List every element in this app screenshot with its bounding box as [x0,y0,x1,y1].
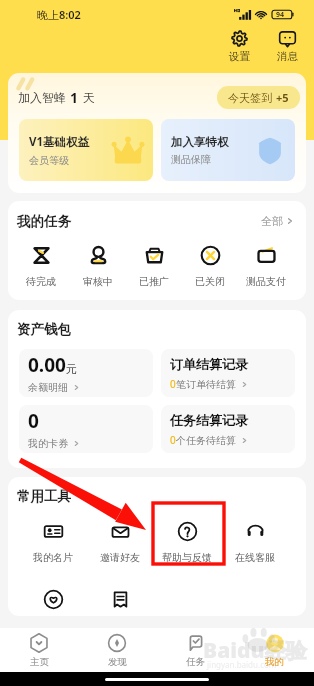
staticText: 审核中 [83,275,113,288]
button[interactable]: 0.00 [19,349,153,397]
staticText: 天 [83,90,95,105]
staticText: 帮助与反馈 [162,551,212,564]
button[interactable]: 今天签到 [217,86,300,109]
button[interactable]: V1基础权益 [19,119,153,181]
staticText: 0 [170,433,176,447]
staticText: 94 [276,10,285,20]
button[interactable]: 主页 [0,628,78,672]
staticText: 个任务待结算 [176,434,236,447]
button[interactable]: 发现 [78,628,156,672]
button[interactable]: 审核中 [80,243,116,290]
staticText: 我的 [265,656,284,668]
staticText: jingyan.baidu.com [207,659,277,670]
staticText: 加入享特权 [171,135,229,149]
staticText: 已推广 [139,275,169,288]
staticText: 晚上8:02 [37,7,81,22]
staticText: 笔订单待结算 [176,378,236,391]
button[interactable]: 已关闭 [192,243,228,290]
staticText: 测品支付 [246,275,286,288]
staticText: 0 [28,408,39,434]
button[interactable]: 0 [19,405,153,453]
staticText: Baidu经验 [203,636,307,665]
staticText: 我的名片 [33,551,73,564]
staticText: 加入智蜂 [18,90,66,105]
button[interactable]: 我的关注 [30,587,76,616]
button[interactable]: 我的 [235,628,314,672]
staticText: 任务 [186,656,205,668]
button[interactable]: 订单结算记录 [161,349,295,397]
staticText: 设置 [229,50,250,63]
staticText: 邀请好友 [100,551,140,564]
staticText: 订单结算记录 [170,356,248,372]
staticText: 常用工具 [17,488,71,505]
staticText: V1基础权益 [29,134,90,150]
button[interactable]: 测品支付 [243,243,289,290]
button[interactable]: 待完成 [23,243,59,290]
staticText: 消息 [277,50,298,63]
staticText: 任务结算记录 [170,412,248,428]
button[interactable]: Messages [271,28,304,65]
staticText: 资产钱包 [17,321,71,338]
staticText: 余额明细 [28,381,68,394]
staticText: 0.00 [28,352,66,378]
staticText: 元 [66,362,77,376]
button[interactable]: 任务结算记录 [161,405,295,453]
button[interactable]: 要我开票 [97,587,143,616]
staticText: 待完成 [26,275,56,288]
staticText: 测品保障 [171,153,211,166]
button[interactable]: 全部 [259,212,296,230]
button[interactable]: 帮助与反馈 [159,519,215,566]
button[interactable]: Settings [223,28,256,65]
button[interactable]: 在线客服 [232,519,278,566]
button[interactable]: 我的名片 [30,519,76,566]
staticText: 会员等级 [29,154,69,167]
staticText: +5 [276,90,289,105]
staticText: 我的任务 [17,213,71,230]
staticText: 我的卡券 [28,437,68,450]
staticText: 全部 [261,214,283,228]
staticText: 0 [170,377,176,391]
button[interactable]: 任务 [156,628,235,672]
staticText: 今天签到 [228,91,272,105]
button[interactable]: 邀请好友 [97,519,143,566]
staticText: 发现 [108,656,127,668]
staticText: 在线客服 [235,551,275,564]
button[interactable]: 已推广 [136,243,172,290]
staticText: 已关闭 [195,275,225,288]
staticText: 主页 [30,656,49,668]
button[interactable]: 加入智蜂 [8,73,306,193]
button[interactable]: 加入享特权 [161,119,295,181]
staticText: 1 [70,88,79,107]
